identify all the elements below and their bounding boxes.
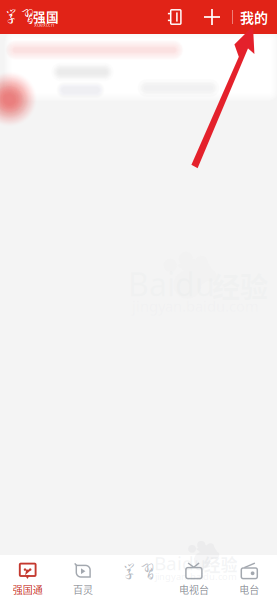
staticText: 学习	[3, 8, 35, 24]
button[interactable]: 学习	[111, 555, 166, 603]
staticText: 电视台	[179, 582, 209, 597]
staticText: 我的	[240, 7, 268, 27]
staticText: Baidu	[154, 550, 206, 576]
button[interactable]: 扫一扫	[160, 4, 190, 30]
button[interactable]: 百灵	[55, 555, 111, 603]
staticText: 学习	[120, 562, 156, 580]
staticText: 强国通	[13, 582, 43, 597]
button[interactable]: 学习强国	[2, 3, 64, 31]
staticText: 百灵	[73, 582, 93, 597]
button[interactable]: 我的	[236, 4, 272, 30]
button[interactable]: 强国通	[0, 555, 55, 603]
staticText: xuexi.cn	[34, 21, 54, 28]
button[interactable]: 电台	[222, 555, 277, 603]
staticText: jingyan.baidu.com	[155, 570, 237, 583]
button[interactable]: 电视台	[166, 555, 222, 603]
staticText: 经验	[204, 552, 238, 576]
staticText: 电台	[239, 582, 259, 597]
button[interactable]: 添加	[197, 4, 227, 30]
staticText: 强国	[33, 7, 59, 25]
